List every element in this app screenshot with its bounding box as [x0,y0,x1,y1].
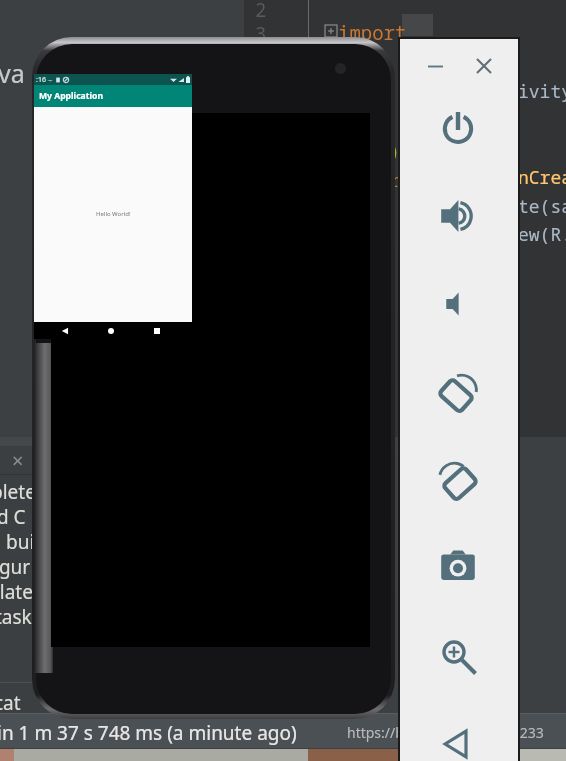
staticText: My Application [39,90,104,102]
staticText: 3 [255,21,267,47]
staticText: https://blog.csdn.net/Ther233 [347,723,544,742]
staticText: in 1 m 37 s 748 ms (a minute ago) [0,720,297,746]
button[interactable]: Volume up [436,194,480,238]
button[interactable]: Rotate left [436,370,480,414]
staticText: ld C [0,504,26,530]
staticText: ew(R. [518,222,566,247]
staticText: )v [389,139,411,164]
button[interactable]: Recents [142,322,172,339]
staticText: nCrea [518,165,566,190]
staticText: task [0,604,32,630]
staticText: plete [0,479,36,505]
button[interactable]: Home [96,322,126,339]
staticText: 2 [255,0,267,23]
button[interactable]: Back [436,722,480,761]
staticText: Hello World! [96,210,131,218]
staticText: cat [0,690,21,716]
button[interactable]: Minimize [417,48,453,84]
button[interactable]: Power [436,106,480,150]
staticText: :16 [36,75,46,85]
staticText: × [12,447,24,474]
staticText: bui [6,529,35,555]
button[interactable]: Screenshot [436,544,480,588]
staticText: igur [0,554,31,580]
staticText: te(sa [518,194,566,219]
button[interactable]: Back [50,322,80,339]
button[interactable]: Zoom in [436,634,480,678]
button[interactable]: Rotate right [436,458,480,502]
staticText: rc [389,168,411,193]
staticText: va [0,56,25,90]
button[interactable]: My Application [34,85,192,107]
button[interactable]: Volume down [436,282,480,326]
staticText: import [338,20,407,46]
staticText: ivity [518,79,566,104]
button[interactable]: Close [466,48,502,84]
staticText: ulate [0,579,33,605]
